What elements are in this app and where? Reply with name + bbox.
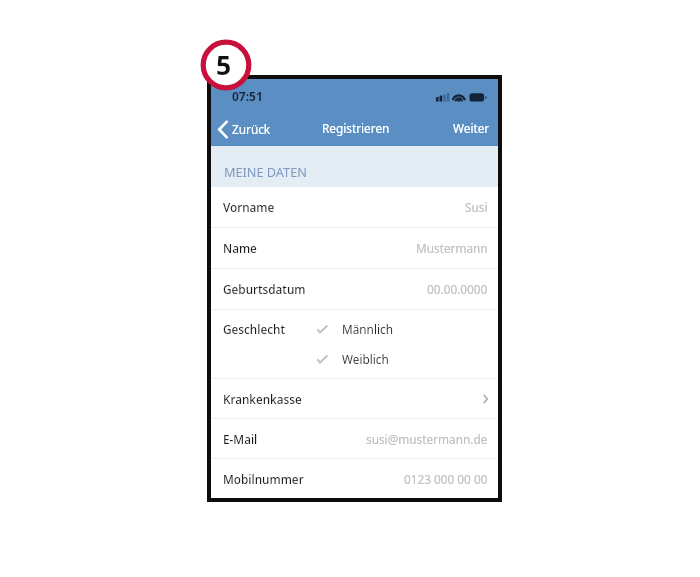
button[interactable]: Krankenkasse [211,379,498,418]
button[interactable]: Geburtsdatum [211,269,498,309]
button[interactable]: Weiblich [316,349,434,369]
staticText: 00.00.0000 [427,281,488,297]
other: Zurück [218,120,228,139]
button[interactable]: Mobilnummer [211,459,498,498]
staticText: 0123 000 00 00 [404,471,488,487]
staticText: Zurück [232,121,271,137]
staticText: 07:51 [232,88,263,104]
staticText: Registrieren [322,120,390,136]
button[interactable]: E-Mail [211,419,498,458]
staticText: 5 [216,47,232,83]
button[interactable]: Weiter [439,114,498,142]
staticText: susi@mustermann.de [366,431,488,447]
staticText: Krankenkasse [223,391,302,407]
staticText: Susi [465,199,488,215]
staticText: Vorname [223,199,275,215]
button[interactable]: Name [211,228,498,268]
staticText: E-Mail [223,431,258,447]
button[interactable]: Zurück [211,115,279,142]
staticText: Geburtsdatum [223,281,306,297]
staticText: Geschlecht [223,321,285,337]
staticText: Mobilnummer [223,471,304,487]
staticText: MEINE DATEN [224,163,307,180]
staticText: Männlich [342,321,393,337]
button[interactable]: Vorname [211,187,498,227]
staticText: Weiblich [342,351,389,367]
other: Open Krankenkasse [483,394,488,404]
button[interactable]: Männlich [316,319,438,339]
staticText: Mustermann [416,240,488,256]
staticText: Name [223,240,257,256]
